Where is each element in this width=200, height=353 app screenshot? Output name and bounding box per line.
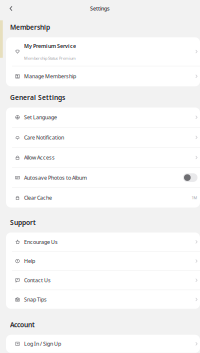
staticText: Allow Access (24, 154, 55, 161)
staticText: My Premium Service (24, 42, 76, 49)
button[interactable]: Help (6, 252, 200, 270)
button[interactable]: Back (0, 6, 13, 11)
staticText: General Settings (10, 93, 65, 102)
staticText: Log In / Sign Up (24, 340, 61, 347)
staticText: Manage Membership (24, 73, 76, 80)
button[interactable]: Log In / Sign Up (6, 335, 200, 353)
button[interactable]: Autosave Photos to Album (6, 168, 200, 187)
button[interactable]: Set Language (6, 107, 200, 127)
staticText: Autosave Photos to Album (24, 174, 87, 181)
button[interactable]: Autosave Photos to Album (183, 173, 197, 182)
button[interactable]: Contact Us (6, 271, 200, 290)
button[interactable]: Manage Membership (6, 66, 200, 86)
button[interactable]: Allow Access (6, 148, 200, 167)
staticText: Snap Tips (24, 296, 47, 303)
button[interactable]: Encourage Us (6, 232, 200, 251)
staticText: Membership (10, 23, 50, 32)
staticText: Help (24, 257, 35, 265)
staticText: Support (10, 218, 36, 227)
button[interactable]: Clear Cache (6, 188, 200, 207)
button[interactable]: Snap Tips (6, 290, 200, 309)
button[interactable]: Care Notification (6, 128, 200, 147)
staticText: Contact Us (24, 277, 51, 284)
staticText: Care Notification (24, 134, 64, 141)
staticText: Encourage Us (24, 238, 58, 245)
staticText: Account (10, 320, 35, 329)
staticText: Clear Cache (24, 194, 52, 201)
staticText: 1M (191, 195, 197, 200)
staticText: Settings (90, 5, 110, 12)
staticText: Set Language (24, 114, 57, 121)
button[interactable]: My Premium Service (6, 37, 200, 66)
staticText: Membership Status Premium (24, 55, 76, 61)
